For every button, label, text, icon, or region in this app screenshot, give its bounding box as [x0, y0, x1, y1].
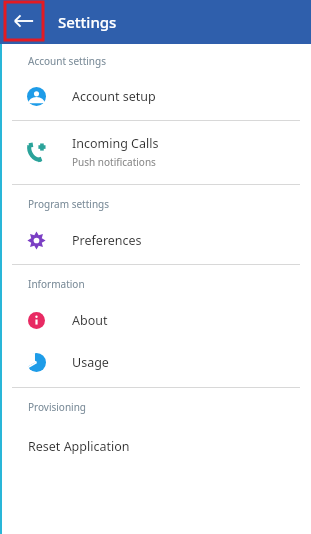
staticText: Account settings [28, 54, 106, 68]
staticText: Incoming Calls [72, 135, 159, 152]
staticText: Program settings [28, 197, 110, 211]
button[interactable]: Usage [0, 346, 311, 378]
staticText: About [72, 312, 108, 329]
button[interactable]: Back [5, 2, 43, 40]
button[interactable]: Preferences [0, 224, 311, 256]
button[interactable]: Reset Application [0, 431, 311, 461]
staticText: Push notifications [72, 155, 156, 169]
button[interactable]: About [0, 304, 311, 336]
staticText: Reset Application [28, 438, 130, 455]
button[interactable]: Account setup [0, 80, 311, 112]
staticText: Settings [58, 12, 117, 32]
staticText: Provisioning [28, 400, 86, 414]
staticText: Account setup [72, 88, 156, 105]
staticText: Usage [72, 354, 109, 371]
staticText: Preferences [72, 232, 142, 249]
button[interactable]: Incoming Calls [0, 131, 311, 173]
staticText: Information [28, 277, 85, 291]
